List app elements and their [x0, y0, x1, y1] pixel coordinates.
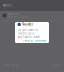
staticText: Wallet — [2, 4, 11, 7]
staticText: Transfer — [22, 23, 33, 26]
staticText: Learn more — [3, 63, 18, 67]
staticText: CANCEL — [22, 39, 32, 42]
staticText: Account — [8, 12, 19, 15]
staticText: TRANSFER — [34, 39, 46, 42]
staticText: Reset — [52, 63, 60, 67]
button[interactable]: TRANSFER — [34, 39, 46, 42]
staticText: Do you want to transfer your application… — [17, 28, 39, 39]
staticText: Sync and backup — [8, 15, 29, 19]
button[interactable]: CANCEL — [22, 39, 32, 42]
